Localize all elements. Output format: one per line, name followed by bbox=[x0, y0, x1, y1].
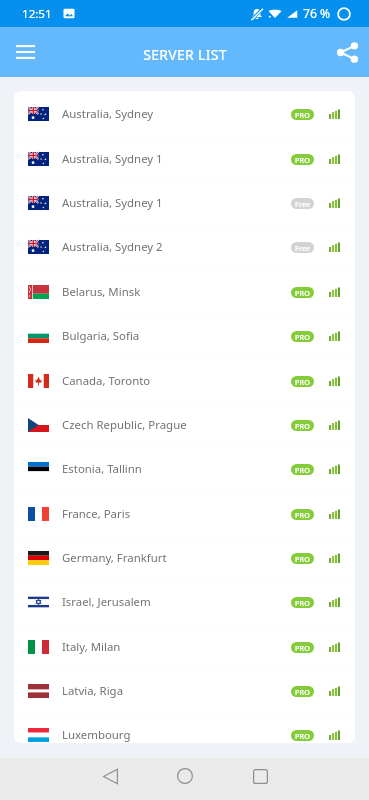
button[interactable]: Australia, Sydney 1 bbox=[14, 181, 355, 225]
button[interactable]: Czech Republic, Prague bbox=[14, 403, 355, 447]
button[interactable]: Recent apps bbox=[238, 755, 282, 797]
button[interactable]: Bulgaria, Sofia bbox=[14, 314, 355, 358]
staticText: PRO bbox=[295, 731, 310, 741]
staticText: 12:51 bbox=[22, 6, 52, 22]
staticText: PRO bbox=[295, 687, 310, 697]
staticText: PRO bbox=[295, 332, 310, 342]
staticText: Germany, Frankfurt bbox=[62, 550, 167, 566]
staticText: Czech Republic, Prague bbox=[62, 417, 187, 433]
staticText: PRO bbox=[295, 421, 310, 431]
staticText: Free bbox=[295, 199, 311, 209]
staticText: PRO bbox=[295, 155, 310, 165]
staticText: PRO bbox=[295, 598, 310, 608]
staticText: 76 % bbox=[303, 5, 331, 22]
button[interactable]: Home bbox=[163, 755, 207, 797]
button[interactable]: Israel, Jerusalem bbox=[14, 580, 355, 624]
staticText: Australia, Sydney 1 bbox=[62, 151, 163, 167]
button[interactable]: Australia, Sydney 1 bbox=[14, 137, 355, 181]
staticText: Free bbox=[295, 243, 311, 253]
button[interactable]: Belarus, Minsk bbox=[14, 270, 355, 314]
staticText: Canada, Toronto bbox=[62, 373, 151, 389]
staticText: PRO bbox=[295, 465, 310, 475]
staticText: Luxembourg bbox=[62, 727, 131, 743]
staticText: Italy, Milan bbox=[62, 639, 121, 655]
staticText: Australia, Sydney 2 bbox=[62, 239, 163, 255]
button[interactable]: Share bbox=[327, 32, 367, 72]
staticText: Estonia, Tallinn bbox=[62, 461, 142, 477]
staticText: Australia, Sydney bbox=[62, 106, 154, 122]
button[interactable]: Estonia, Tallinn bbox=[14, 447, 355, 491]
staticText: PRO bbox=[295, 288, 310, 298]
button[interactable]: Latvia, Riga bbox=[14, 669, 355, 713]
button[interactable]: Australia, Sydney bbox=[14, 92, 355, 136]
button[interactable]: Back bbox=[88, 755, 132, 797]
staticText: Belarus, Minsk bbox=[62, 284, 141, 300]
staticText: PRO bbox=[295, 554, 310, 564]
button[interactable]: France, Paris bbox=[14, 492, 355, 536]
staticText: PRO bbox=[295, 643, 310, 653]
staticText: SERVER LIST bbox=[143, 45, 227, 64]
button[interactable]: Open navigation menu bbox=[5, 32, 45, 72]
button[interactable]: Canada, Toronto bbox=[14, 359, 355, 403]
staticText: PRO bbox=[295, 510, 310, 520]
button[interactable]: Italy, Milan bbox=[14, 625, 355, 669]
button[interactable]: Germany, Frankfurt bbox=[14, 536, 355, 580]
staticText: France, Paris bbox=[62, 506, 131, 522]
button[interactable]: Australia, Sydney 2 bbox=[14, 225, 355, 269]
staticText: Latvia, Riga bbox=[62, 683, 124, 699]
staticText: Australia, Sydney 1 bbox=[62, 195, 163, 211]
staticText: PRO bbox=[295, 110, 310, 120]
staticText: PRO bbox=[295, 377, 310, 387]
staticText: Bulgaria, Sofia bbox=[62, 328, 140, 344]
button[interactable]: Luxembourg bbox=[14, 713, 355, 743]
staticText: Israel, Jerusalem bbox=[62, 594, 151, 610]
